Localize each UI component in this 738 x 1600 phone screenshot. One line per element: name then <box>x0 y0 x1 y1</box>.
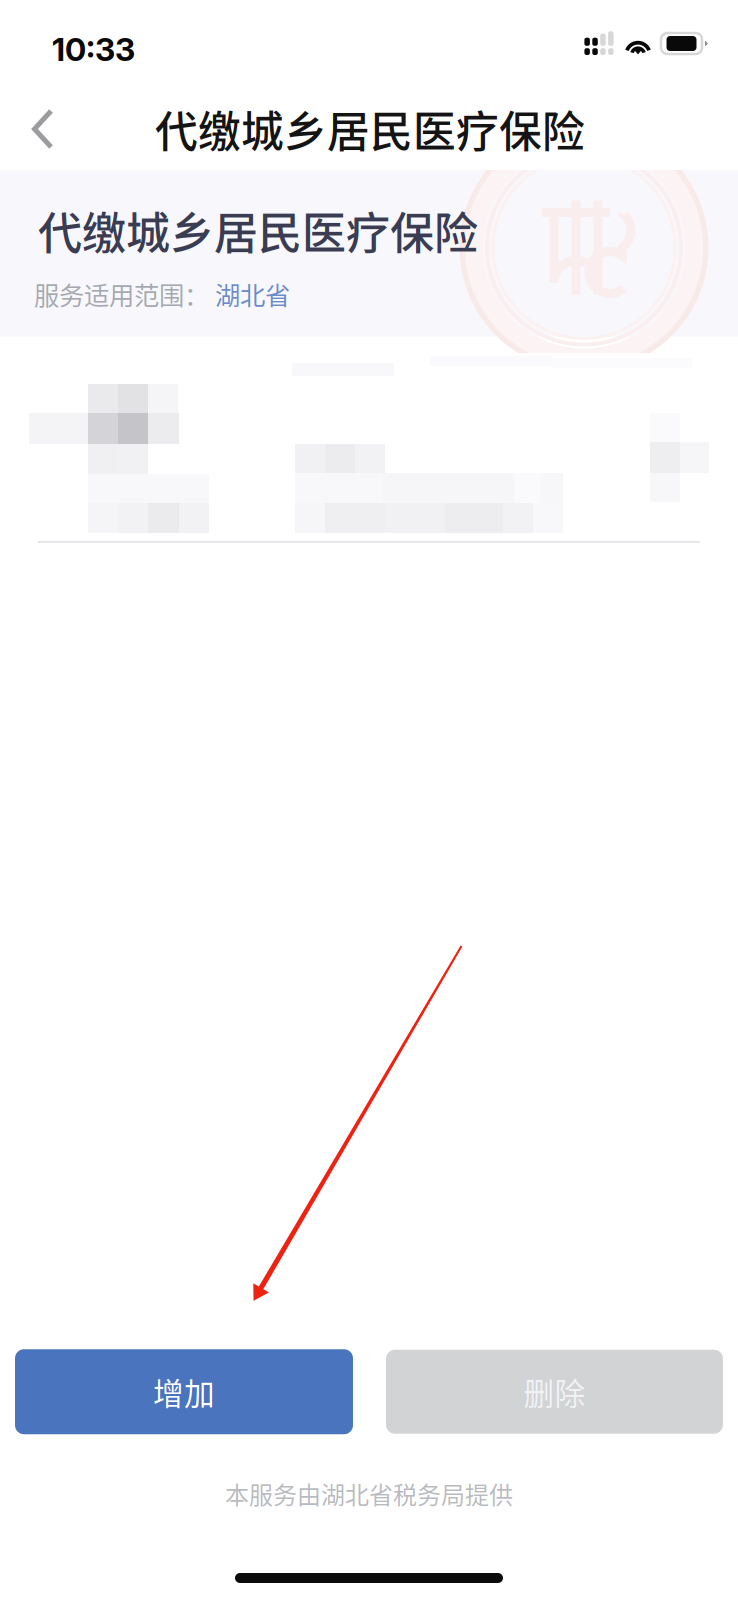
staticText: 10:33 <box>52 30 135 69</box>
button[interactable]: 删除 <box>386 1350 723 1434</box>
staticText: 湖北省 <box>209 275 290 312</box>
staticText: 服务适用范围： <box>34 275 209 312</box>
staticText: 代缴城乡居民医疗保险 <box>155 98 585 160</box>
button[interactable]: 增加 <box>15 1349 353 1434</box>
staticText: 代缴城乡居民医疗保险 <box>38 198 478 262</box>
button[interactable]: 返回 <box>12 104 74 154</box>
staticText: 增加 <box>153 1369 215 1414</box>
staticText: 本服务由湖北省税务局提供 <box>225 1476 513 1511</box>
staticText: 删除 <box>523 1369 585 1414</box>
